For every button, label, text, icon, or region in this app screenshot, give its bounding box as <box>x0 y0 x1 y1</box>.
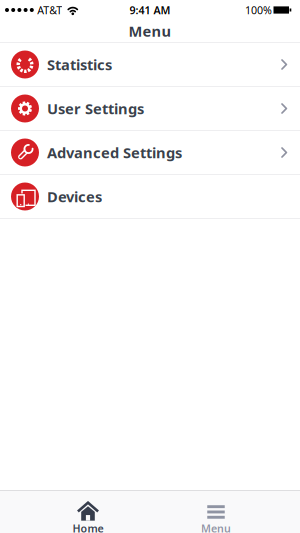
button[interactable]: Devices <box>0 175 300 218</box>
staticText: 100% <box>245 3 272 17</box>
button[interactable]: Home <box>24 489 152 533</box>
staticText: Devices <box>47 187 102 206</box>
button[interactable]: Statistics <box>0 43 300 86</box>
staticText: Statistics <box>47 55 112 74</box>
staticText: User Settings <box>47 99 144 118</box>
staticText: 9:41 AM <box>129 3 170 17</box>
staticText: Menu <box>201 521 231 533</box>
button[interactable]: Menu <box>152 489 280 533</box>
staticText: Menu <box>128 21 171 41</box>
button[interactable]: User Settings <box>0 87 300 130</box>
staticText: Advanced Settings <box>47 143 182 162</box>
staticText: AT&T <box>37 3 62 17</box>
staticText: Home <box>72 521 103 533</box>
button[interactable]: Advanced Settings <box>0 131 300 174</box>
